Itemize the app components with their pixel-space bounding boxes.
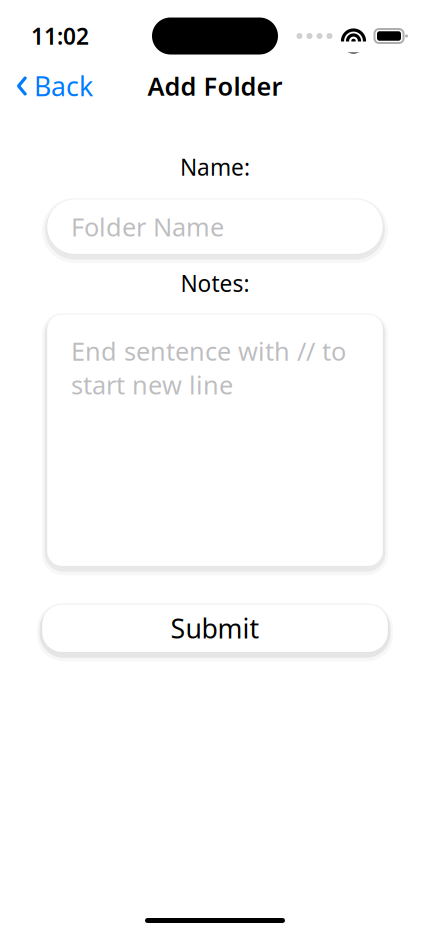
- button[interactable]: Back: [8, 62, 101, 110]
- staticText: Folder Name: [71, 210, 224, 243]
- button[interactable]: Folder Name: [47, 199, 383, 254]
- staticText: 11:02: [31, 21, 89, 51]
- staticText: Name:: [180, 152, 250, 182]
- staticText: Notes:: [180, 268, 249, 298]
- staticText: Submit: [170, 610, 259, 646]
- staticText: Back: [34, 68, 93, 104]
- button[interactable]: Submit: [42, 604, 388, 652]
- staticText: Add Folder: [147, 69, 282, 103]
- staticText: End sentence with // to start new line: [71, 334, 346, 401]
- button[interactable]: Notes: [47, 314, 383, 566]
